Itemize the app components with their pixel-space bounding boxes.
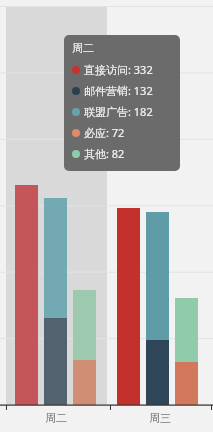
staticText: 周二 — [45, 411, 67, 425]
button[interactable]: Chart tooltip for 周二 — [72, 41, 172, 164]
staticText: 周二 — [72, 41, 94, 55]
button[interactable]: 周三 — [137, 409, 183, 427]
staticText: 邮件营销: 132 — [84, 83, 153, 98]
staticText: 周三 — [149, 411, 171, 425]
staticText: 联盟广告: 182 — [84, 104, 153, 119]
staticText: 必应: 72 — [84, 125, 125, 140]
staticText: 直接访问: 332 — [84, 62, 153, 77]
button[interactable]: 周二 — [33, 409, 79, 427]
button[interactable]: 周二 — [0, 0, 213, 432]
staticText: 其他: 82 — [84, 146, 125, 161]
